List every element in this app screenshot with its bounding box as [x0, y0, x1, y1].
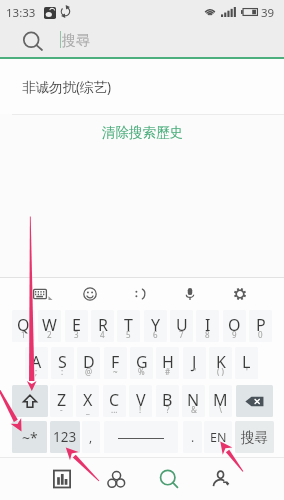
button[interactable]: Emoji	[76, 280, 104, 308]
button[interactable]: Space	[104, 421, 178, 453]
button[interactable]: O	[223, 310, 246, 342]
staticText: 7	[179, 329, 184, 340]
staticText: O	[228, 314, 241, 336]
button[interactable]: T	[117, 310, 140, 342]
staticText: :	[61, 366, 64, 377]
staticText: S	[58, 351, 67, 373]
staticText: G	[136, 351, 148, 373]
staticText: EN	[210, 429, 227, 446]
staticText: Y	[151, 314, 161, 336]
staticText: D	[83, 351, 95, 373]
button[interactable]: L	[235, 347, 258, 379]
button[interactable]: F	[104, 347, 127, 379]
staticText: C	[109, 389, 120, 411]
staticText: 8	[205, 329, 210, 340]
button[interactable]: Discover	[90, 458, 142, 499]
staticText: 13:33	[6, 5, 36, 21]
staticText: ?	[166, 404, 170, 415]
button[interactable]: Z	[50, 385, 73, 417]
button[interactable]: Profile	[195, 458, 247, 499]
staticText: @	[85, 366, 93, 377]
staticText: L	[242, 351, 251, 373]
staticText: M	[213, 389, 228, 411]
button[interactable]: 非诚勿扰(综艺)	[0, 59, 284, 114]
staticText: 39	[261, 5, 275, 21]
staticText: J	[192, 351, 197, 373]
button[interactable]: Emoticons	[126, 280, 154, 308]
button[interactable]: Shift	[12, 385, 48, 417]
staticText: 5	[126, 329, 131, 340]
button[interactable]: D	[77, 347, 100, 379]
staticText: \	[219, 404, 222, 415]
button[interactable]: 清除搜索歷史	[0, 115, 284, 150]
staticText: B	[162, 389, 173, 411]
button[interactable]: V	[129, 385, 152, 417]
staticText: R	[98, 314, 108, 336]
staticText: U	[176, 314, 188, 336]
staticText: '	[246, 366, 248, 377]
staticText: ...	[111, 404, 118, 415]
button[interactable]: I	[196, 310, 219, 342]
staticText: 2	[47, 329, 52, 340]
staticText: -	[60, 404, 63, 415]
button[interactable]: J	[183, 347, 206, 379]
staticText: H	[162, 351, 174, 373]
staticText: W	[42, 314, 57, 336]
button[interactable]: B	[156, 385, 179, 417]
staticText: 非诚勿扰(综艺)	[22, 78, 112, 96]
button[interactable]: R	[91, 310, 114, 342]
staticText: 搜尋	[62, 32, 90, 50]
staticText: 123	[53, 428, 77, 446]
button[interactable]: 搜尋	[235, 421, 274, 453]
button[interactable]: K	[209, 347, 232, 379]
button[interactable]: Backspace	[236, 385, 273, 417]
staticText: ~	[113, 366, 118, 377]
button[interactable]: Y	[144, 310, 167, 342]
button[interactable]: M	[209, 385, 232, 417]
button[interactable]: S	[51, 347, 74, 379]
staticText: V	[136, 389, 146, 411]
button[interactable]: Search	[143, 458, 195, 499]
button[interactable]: E	[65, 310, 88, 342]
staticText: 3	[74, 329, 79, 340]
staticText: ;	[35, 366, 38, 377]
staticText: ~*	[22, 428, 38, 447]
button[interactable]: U	[170, 310, 193, 342]
staticText: 4	[100, 329, 105, 340]
staticText: T	[124, 314, 133, 336]
staticText: !	[139, 404, 142, 415]
staticText: X	[83, 389, 93, 411]
staticText: &	[191, 404, 197, 415]
button[interactable]: ,	[82, 421, 100, 453]
staticText: F	[111, 351, 120, 373]
staticText: 搜尋	[241, 429, 268, 446]
button[interactable]: C	[103, 385, 126, 417]
button[interactable]: Q	[12, 310, 35, 342]
staticText: #	[165, 366, 171, 377]
staticText: E	[72, 314, 81, 336]
staticText: _	[86, 404, 90, 415]
staticText: ,	[89, 429, 93, 445]
staticText: .	[191, 429, 195, 445]
staticText: %	[138, 366, 145, 377]
button[interactable]: Charts	[36, 458, 88, 499]
button[interactable]: P	[249, 310, 272, 342]
button[interactable]: H	[156, 347, 179, 379]
button[interactable]: Settings	[226, 280, 254, 308]
staticText: 6	[153, 329, 158, 340]
button[interactable]: A	[25, 347, 48, 379]
button[interactable]: 123	[50, 421, 80, 453]
button[interactable]: .	[183, 421, 202, 453]
staticText: A	[31, 351, 42, 373]
button[interactable]: Voice input	[176, 280, 204, 308]
button[interactable]: W	[38, 310, 61, 342]
staticText: 9	[232, 329, 237, 340]
button[interactable]: ~*	[12, 421, 47, 453]
button[interactable]: X	[76, 385, 99, 417]
button[interactable]: G	[130, 347, 153, 379]
button[interactable]: EN	[204, 421, 232, 453]
button[interactable]: N	[182, 385, 205, 417]
button[interactable]: Keyboard layout	[26, 280, 54, 308]
staticText: 0	[258, 329, 263, 340]
staticText: Z	[57, 389, 67, 411]
